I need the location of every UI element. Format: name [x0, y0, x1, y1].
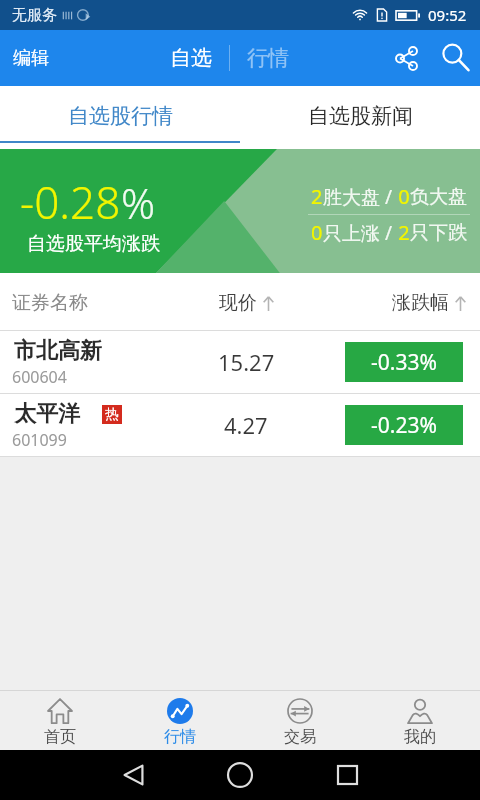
- staticText: -0.33%: [371, 348, 437, 377]
- staticText: 15.27: [218, 347, 275, 377]
- button[interactable]: 首页: [0, 691, 120, 750]
- staticText: 4.27: [224, 410, 268, 440]
- button[interactable]: 我的: [360, 691, 480, 750]
- staticText: 首页: [44, 727, 76, 747]
- staticText: 行情: [164, 727, 196, 747]
- button[interactable]: 交易: [240, 691, 360, 750]
- staticText: %: [121, 174, 156, 231]
- staticText: /: [385, 220, 393, 246]
- staticText: 09:52: [428, 5, 467, 25]
- staticText: 0: [311, 219, 323, 246]
- button[interactable]: Home: [224, 759, 256, 791]
- button[interactable]: 自选: [164, 35, 218, 81]
- staticText: 证券名称: [12, 291, 88, 315]
- staticText: 我的: [404, 727, 436, 747]
- button[interactable]: Search: [438, 40, 474, 76]
- button[interactable]: 编辑: [0, 30, 480, 86]
- staticText: 2: [311, 183, 323, 210]
- staticText: 胜大盘: [323, 184, 385, 210]
- staticText: 自选股平均涨跌: [27, 232, 160, 256]
- button[interactable]: 自选股行情: [0, 86, 240, 149]
- staticText: 只上涨: [323, 220, 385, 246]
- button[interactable]: 行情: [120, 691, 240, 750]
- staticText: 涨跌幅: [392, 291, 449, 315]
- staticText: 无服务: [12, 6, 57, 25]
- staticText: 太平洋: [14, 400, 80, 428]
- button[interactable]: Back: [117, 759, 149, 791]
- staticText: 负大盘: [410, 185, 467, 209]
- button[interactable]: 自选股新闻: [240, 86, 480, 149]
- staticText: 交易: [284, 727, 316, 747]
- staticText: 现价: [219, 291, 257, 315]
- staticText: 自选股新闻: [308, 103, 413, 129]
- button[interactable]: Recent apps: [331, 759, 363, 791]
- button[interactable]: Share: [388, 40, 424, 76]
- staticText: /: [385, 184, 393, 210]
- staticText: 0: [393, 183, 410, 210]
- button[interactable]: 行情: [241, 35, 295, 81]
- staticText: 自选股行情: [68, 103, 173, 129]
- staticText: -0.23%: [371, 411, 437, 440]
- staticText: 自选: [170, 45, 212, 71]
- button[interactable]: 太平洋: [0, 394, 480, 456]
- staticText: -0.28: [20, 172, 121, 232]
- staticText: 只下跌: [410, 221, 467, 245]
- staticText: 600604: [12, 366, 67, 388]
- staticText: 市北高新: [14, 337, 102, 365]
- staticText: 热: [105, 406, 119, 424]
- staticText: 601099: [12, 429, 67, 451]
- staticText: 编辑: [13, 47, 49, 70]
- staticText: 行情: [247, 45, 289, 71]
- button[interactable]: 市北高新: [0, 331, 480, 393]
- staticText: 2: [393, 219, 410, 246]
